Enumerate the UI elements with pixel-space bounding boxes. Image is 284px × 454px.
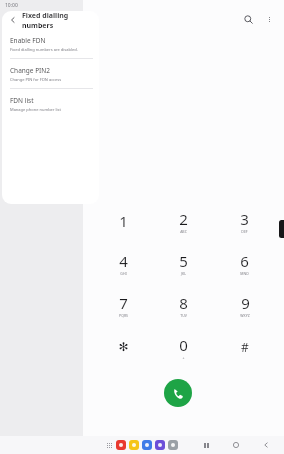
button[interactable]: App 3 [142,440,152,450]
staticText: JKL [181,271,186,276]
button[interactable]: Call [164,379,192,407]
button[interactable]: 4 [93,242,153,284]
button[interactable]: 5 [153,242,214,284]
staticText: 0 [179,335,188,355]
button[interactable]: Recents [200,439,212,451]
staticText: 9 [241,293,250,313]
staticText: Change PIN for FDN access [10,77,62,82]
button[interactable]: 9 [214,284,275,326]
button[interactable]: Open panel [279,220,284,238]
staticText: + [182,355,185,360]
button[interactable]: 3 [214,200,275,242]
staticText: 2 [179,209,188,229]
button[interactable]: 1 [93,200,153,242]
staticText: DEF [241,229,248,234]
button[interactable]: 2 [153,200,214,242]
button[interactable]: Back [7,14,19,26]
button[interactable]: All apps [104,440,114,450]
button[interactable]: # [214,326,275,368]
staticText: ✻ [118,340,129,354]
button[interactable]: App 5 [168,440,178,450]
staticText: # [241,339,249,355]
staticText: PQRS [119,313,128,318]
staticText: Manage phone number list [10,107,61,112]
staticText: GHI [120,271,127,276]
button[interactable]: More options [260,10,278,28]
button[interactable]: 0 [153,326,214,368]
staticText: WXYZ [240,313,250,318]
staticText: Enable FDN [10,36,46,45]
staticText: 8 [179,293,188,313]
staticText: 5 [179,251,188,271]
staticText: Fixed dialling numbers are disabled. [10,47,78,52]
button[interactable]: App 2 [129,440,139,450]
button[interactable]: 6 [214,242,275,284]
button[interactable]: Back [260,439,272,451]
staticText: TUV [180,313,187,318]
button[interactable]: Change PIN2 [2,59,99,88]
button[interactable]: ✻ [93,326,153,368]
staticText: 6 [240,251,249,271]
button[interactable]: 7 [93,284,153,326]
staticText: 1 [119,211,128,231]
button[interactable]: Enable FDN [2,29,99,58]
button[interactable]: App 4 [155,440,165,450]
staticText: Change PIN2 [10,66,50,75]
staticText: 4 [119,251,128,271]
staticText: FDN list [10,96,34,105]
button[interactable]: Home [230,439,242,451]
staticText: ABC [180,229,187,234]
staticText: 7 [119,293,128,313]
button[interactable]: App 1 [116,440,126,450]
button[interactable]: FDN list [2,89,99,118]
staticText: MNO [240,271,249,276]
button[interactable]: 8 [153,284,214,326]
staticText: Fixed dialling numbers [22,11,99,29]
staticText: 10:00 [5,2,18,9]
button[interactable]: Search [239,10,257,28]
staticText: 3 [240,209,249,229]
